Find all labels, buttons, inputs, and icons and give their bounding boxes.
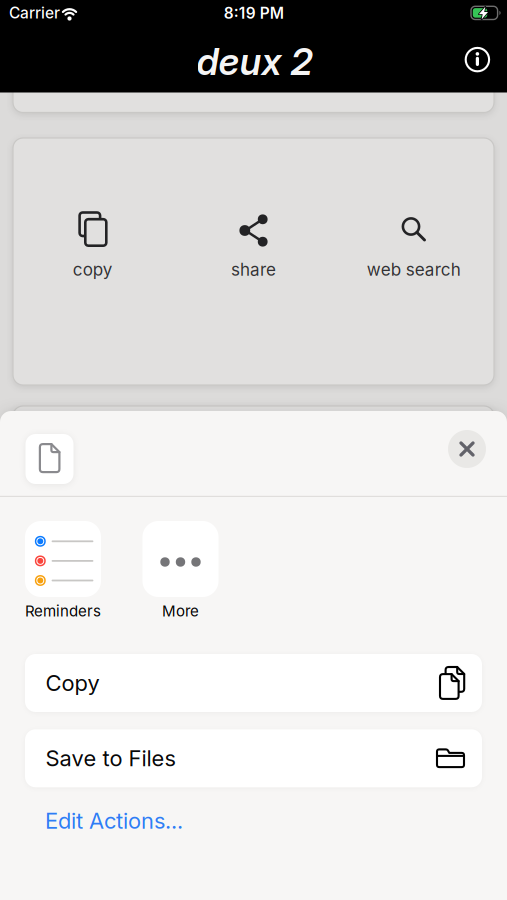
button[interactable]: More — [142, 521, 218, 620]
button[interactable]: Reminders — [25, 521, 101, 620]
button[interactable]: Close — [448, 430, 486, 468]
staticText: share — [231, 259, 276, 280]
staticText: 8:19 PM — [224, 4, 284, 22]
button[interactable]: share — [178, 180, 328, 303]
staticText: web search — [367, 259, 461, 280]
button[interactable]: copy — [18, 180, 168, 303]
button[interactable]: web search — [339, 180, 489, 303]
button[interactable]: Save to Files — [25, 729, 482, 787]
staticText: Save to Files — [45, 745, 175, 772]
staticText: copy — [73, 259, 113, 280]
button[interactable]: Copy — [25, 654, 482, 712]
button[interactable]: Edit Actions... — [45, 807, 183, 834]
button[interactable]: Info — [463, 46, 491, 74]
staticText: Edit Actions... — [45, 807, 183, 834]
staticText: More — [162, 602, 199, 620]
staticText: Reminders — [25, 602, 101, 620]
staticText: Copy — [45, 670, 99, 696]
staticText: deux 2 — [196, 39, 312, 84]
staticText: Carrier — [9, 4, 60, 22]
